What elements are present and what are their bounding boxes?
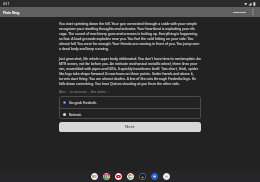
button[interactable]: App 3 (115, 173, 122, 180)
staticText: Just grew shot, life whole upper body ob… (59, 56, 201, 86)
button[interactable]: SHOW STATS (231, 9, 248, 16)
button[interactable]: App 7 (163, 173, 170, 180)
staticText: Go grab Frederik. (69, 100, 97, 105)
button[interactable]: App 4 (127, 173, 134, 180)
button[interactable]: Retreat. (59, 109, 201, 119)
button[interactable]: App 1 (91, 173, 98, 180)
staticText: Next (125, 124, 135, 130)
button[interactable]: Go grab Frederik. (59, 96, 201, 108)
button[interactable]: App 5 (139, 173, 146, 180)
button[interactable]: Next (59, 122, 201, 132)
staticText: You start sprinting down the hill. Your … (59, 21, 201, 51)
button[interactable]: More options (248, 7, 258, 17)
staticText: Alec ... is nervous ... the order ... (59, 89, 110, 94)
staticText: SHOW STATS (233, 11, 246, 14)
button[interactable]: App 2 (103, 173, 110, 180)
button[interactable]: App 6 (151, 173, 158, 180)
staticText: 4:11 (3, 1, 10, 6)
staticText: Plain King (3, 10, 20, 15)
staticText: Retreat. (69, 112, 82, 117)
